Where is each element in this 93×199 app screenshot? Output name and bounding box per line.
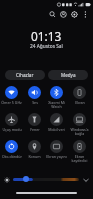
button[interactable] [23, 85, 45, 107]
button[interactable]: Cihazlar [5, 70, 45, 80]
button[interactable]: Brightness [23, 176, 29, 182]
button[interactable]: Search [47, 9, 58, 20]
staticText: Fener [30, 127, 40, 132]
button[interactable] [0, 139, 22, 161]
button[interactable] [46, 85, 68, 107]
button[interactable]: More options [80, 9, 91, 20]
button[interactable]: Medya [48, 70, 88, 80]
button[interactable] [23, 112, 45, 134]
button[interactable] [23, 139, 45, 161]
button[interactable]: Settings [69, 9, 80, 20]
button[interactable] [0, 112, 22, 134]
staticText: 01:13 [31, 28, 62, 44]
staticText: Ömer 5 GHz [1, 100, 22, 105]
staticText: Uçuş modu [2, 127, 22, 132]
staticText: Konum [28, 154, 41, 159]
button[interactable]: Expand [81, 175, 90, 184]
staticText: Ses [32, 100, 38, 105]
staticText: 24 Ağustos Sal [30, 43, 63, 50]
button[interactable] [68, 85, 90, 107]
button[interactable] [68, 112, 90, 134]
staticText: Ekran [75, 100, 85, 105]
button[interactable] [68, 139, 90, 161]
staticText: Xiaomi Mi Watch [45, 100, 68, 109]
button[interactable] [46, 139, 68, 161]
staticText: Ekran kaydedici [68, 154, 91, 163]
staticText: Oto-döndür [2, 154, 22, 159]
button[interactable] [0, 85, 22, 107]
button[interactable] [46, 112, 68, 134]
staticText: Ekran yayını [46, 154, 67, 159]
staticText: Cihazlar [16, 72, 34, 78]
staticText: Windows'a bağla [68, 127, 91, 136]
button[interactable]: Account [58, 9, 69, 20]
staticText: Medya [61, 72, 76, 78]
staticText: Mobil veri [48, 127, 65, 132]
